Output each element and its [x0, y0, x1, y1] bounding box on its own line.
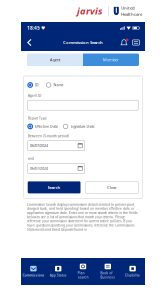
staticText: Name	[53, 83, 63, 87]
button[interactable]: Notifications	[118, 34, 130, 51]
button[interactable]: Eligibility	[120, 258, 145, 285]
button[interactable]: Clear	[85, 181, 138, 193]
staticText: Healthcare	[121, 11, 142, 17]
staticText: App Status	[50, 273, 67, 277]
staticText: United	[121, 5, 135, 11]
staticText: Search	[48, 185, 61, 190]
staticText: Signature Date	[70, 124, 94, 129]
staticText: and	[28, 156, 34, 161]
button[interactable]: App Status	[46, 258, 71, 285]
staticText: 06/07/2024	[30, 143, 48, 148]
button[interactable]: Book of Business	[95, 258, 120, 285]
staticText: jarvis	[77, 5, 102, 17]
staticText: Clear	[107, 185, 117, 190]
staticText: ID	[35, 83, 39, 87]
staticText: Plan Search	[77, 271, 88, 279]
staticText: Commission Search displays commission de…	[27, 202, 137, 232]
staticText: Commission Search	[63, 40, 103, 45]
staticText: Commissions	[22, 273, 44, 277]
button[interactable]: Plan Search	[71, 258, 95, 285]
staticText: 18:45 ♥	[27, 25, 45, 31]
staticText: Member	[103, 57, 119, 62]
staticText: Book of Business	[100, 271, 115, 279]
staticText: Report Type	[28, 116, 47, 120]
staticText: Agent	[50, 57, 60, 62]
button[interactable]: Menu	[130, 34, 142, 51]
staticText: Eligibility	[125, 273, 140, 277]
staticText: 06/07/2024	[30, 166, 48, 171]
staticText: Agent ID	[28, 93, 42, 98]
button[interactable]: Search	[28, 181, 80, 193]
button[interactable]: Member	[83, 53, 139, 66]
staticText: Effective Date	[35, 124, 58, 129]
button[interactable]: Agent	[27, 53, 83, 66]
staticText: Between (3-month period)	[28, 133, 69, 138]
button[interactable]: Back	[23, 34, 36, 51]
button[interactable]: Commissions	[21, 258, 46, 285]
